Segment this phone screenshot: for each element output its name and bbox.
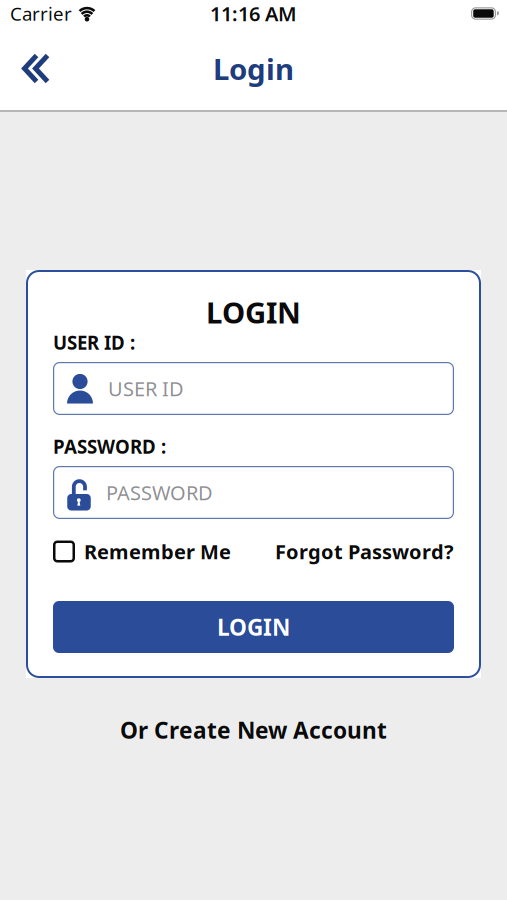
staticText: Remember Me [84,538,231,565]
staticText: PASSWORD : [53,434,166,459]
button[interactable]: LOGIN [53,601,454,653]
button[interactable]: Remember Me [53,538,231,565]
staticText: USER ID [108,375,184,402]
staticText: PASSWORD [106,479,213,506]
staticText: Login [213,49,294,88]
button[interactable]: Or Create New Account [120,715,387,745]
button[interactable]: Forgot Password? [275,538,454,565]
staticText: Forgot Password? [275,538,454,565]
button[interactable]: Back [0,47,50,90]
staticText: LOGIN [217,612,290,642]
staticText: LOGIN [206,292,301,331]
staticText: Carrier [10,1,72,26]
staticText: 11:16 AM [210,0,297,27]
staticText: USER ID : [53,330,135,355]
staticText: Or Create New Account [120,715,387,745]
